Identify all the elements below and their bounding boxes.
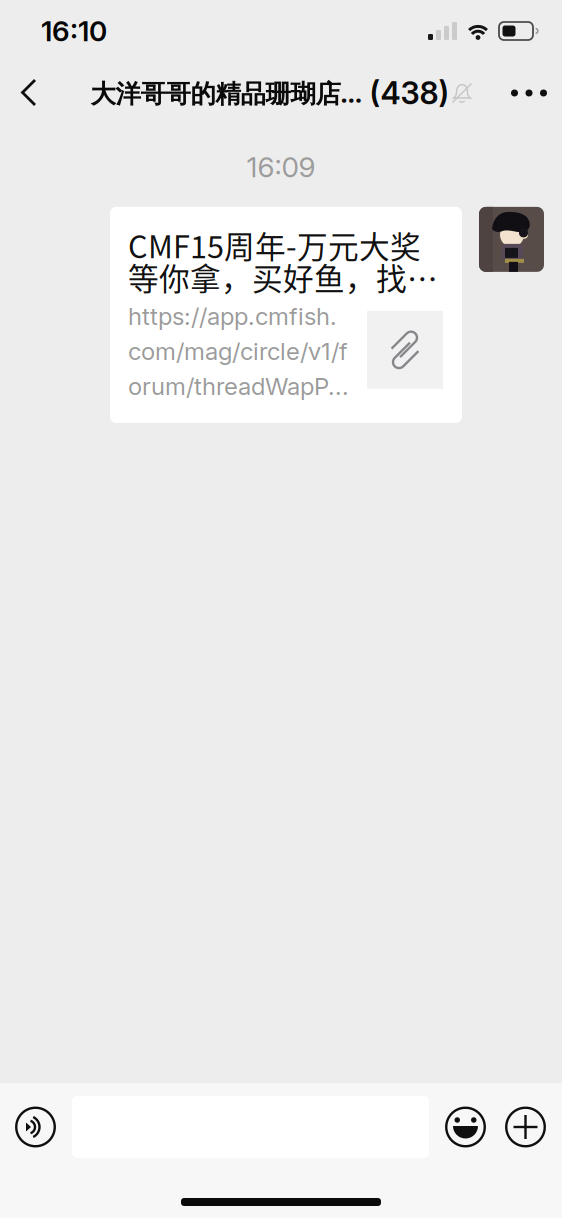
staticText: orum/threadWapP... (128, 372, 349, 401)
staticText: 16:09 (246, 150, 315, 184)
staticText: com/mag/circle/v1/f (128, 337, 348, 366)
staticText: 等你拿，买好鱼，找… (128, 255, 438, 299)
button[interactable]: More (496, 62, 562, 124)
button[interactable]: Back (0, 62, 58, 124)
staticText: 大洋哥哥的精品珊瑚店… (90, 76, 362, 110)
button[interactable]: Voice message (16, 1096, 55, 1158)
staticText: 16:10 (41, 14, 107, 48)
staticText: https://app.cmfish. (128, 302, 337, 331)
staticText: CMF15周年-万元大奖 (128, 223, 421, 267)
button[interactable]: Emoji (446, 1096, 485, 1158)
staticText: (438) (369, 74, 449, 111)
button[interactable]: More (506, 1096, 545, 1158)
